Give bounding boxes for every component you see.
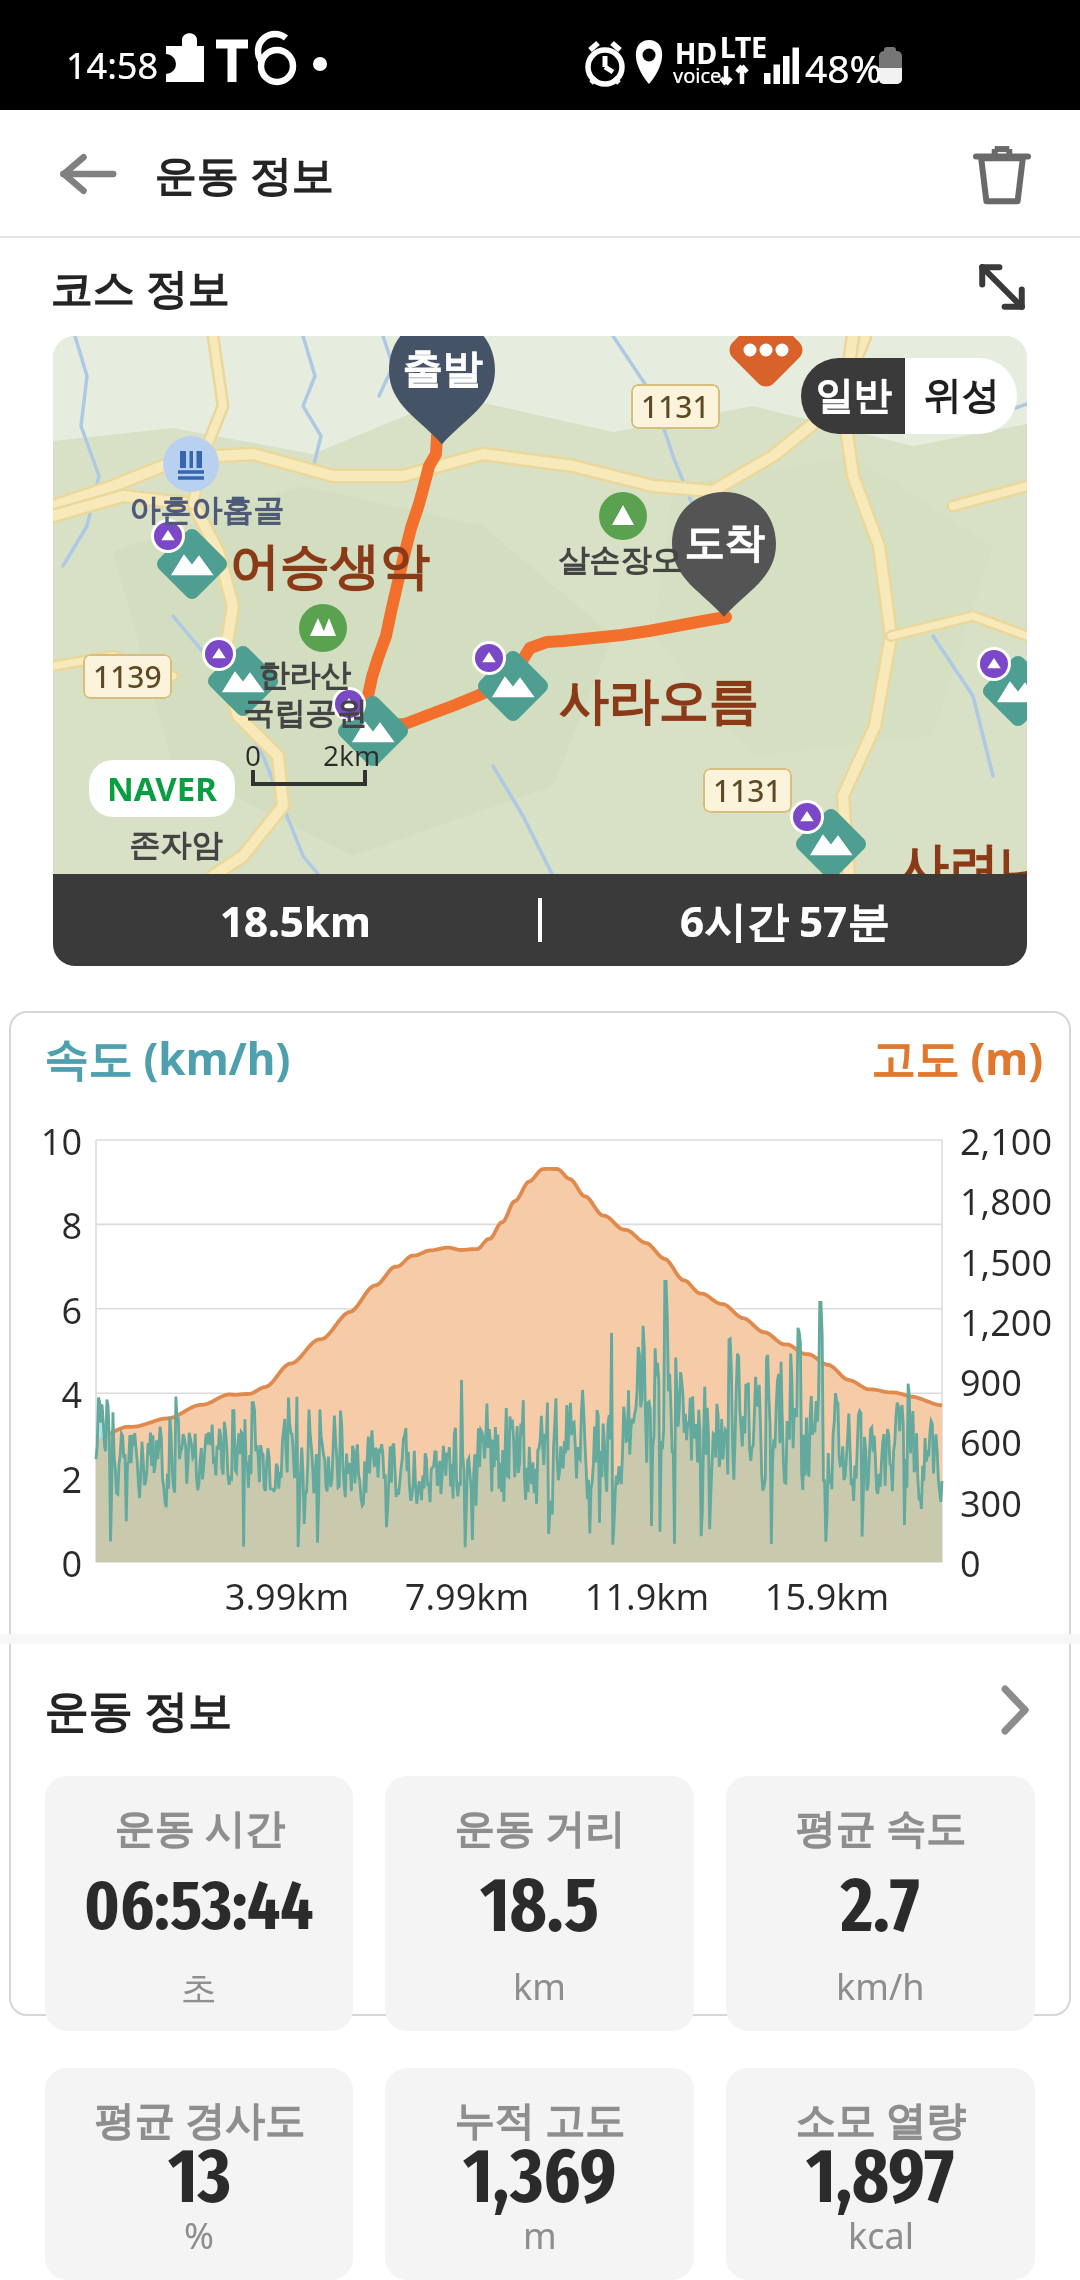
button[interactable]: Expand map (962, 247, 1042, 327)
staticText: 10 (24, 1117, 82, 1166)
staticText: 소모 열량 (795, 2092, 966, 2147)
staticText: 18.5 (480, 1860, 599, 1951)
staticText: 6 (24, 1286, 82, 1335)
staticText: 평균 속도 (795, 1800, 966, 1855)
staticText: 고도 (m) (871, 1028, 1044, 1088)
staticText: LTE (720, 28, 767, 66)
staticText: 2,100 (960, 1117, 1070, 1166)
staticText: 1139 (93, 656, 162, 697)
staticText: 1131 (713, 770, 782, 811)
staticText: 11.9km (562, 1572, 732, 1621)
staticText: 속도 (km/h) (44, 1028, 291, 1088)
button[interactable]: Back (44, 130, 132, 218)
staticText: 출발 (402, 344, 482, 394)
button[interactable]: 평균 속도 (726, 1776, 1035, 2031)
staticText: 아흔아홉골 (129, 491, 284, 530)
staticText: 2.7 (841, 1860, 920, 1951)
staticText: 1,200 (960, 1298, 1070, 1347)
staticText: kcal (848, 2211, 914, 2260)
staticText: 2km (323, 736, 381, 774)
staticText: HD (675, 34, 717, 72)
staticText: 4 (24, 1370, 82, 1419)
button[interactable]: 소모 열량 (726, 2068, 1035, 2280)
button[interactable]: 운동 시간 (45, 1776, 353, 2031)
staticText: 일반 (815, 372, 891, 420)
staticText: m (523, 2211, 557, 2260)
staticText: 운동 거리 (454, 1800, 625, 1855)
staticText: 3.99km (202, 1572, 372, 1621)
staticText: 1,369 (463, 2131, 617, 2222)
staticText: 존자암 (129, 826, 222, 865)
staticText: 국립공원 (243, 694, 367, 733)
staticText: km (513, 1962, 566, 2011)
staticText: % (184, 2211, 214, 2260)
button[interactable]: Course map (53, 336, 1027, 966)
staticText: 사라오름 (558, 671, 758, 734)
button[interactable]: 운동 정보 (0, 1644, 1080, 1776)
button[interactable]: 일반 (801, 358, 905, 434)
staticText: 1,500 (960, 1238, 1070, 1287)
staticText: 48% (805, 41, 883, 94)
staticText: 살손장오 (558, 541, 682, 580)
staticText: 600 (960, 1418, 1070, 1467)
staticText: 6시간 57분 (680, 892, 889, 949)
staticText: 운동 정보 (154, 146, 333, 203)
button[interactable]: 평균 경사도 (45, 2068, 353, 2280)
button[interactable]: 운동 거리 (385, 1776, 694, 2031)
button[interactable]: Delete (958, 130, 1046, 218)
staticText: 13 (168, 2131, 231, 2222)
staticText: 운동 정보 (44, 1680, 232, 1740)
staticText: 14:58 (66, 41, 159, 90)
staticText: 900 (960, 1358, 1070, 1407)
staticText: 2 (24, 1455, 82, 1504)
staticText: 7.99km (382, 1572, 552, 1621)
staticText: 1,800 (960, 1177, 1070, 1226)
staticText: NAVER (107, 766, 217, 811)
staticText: 1131 (641, 386, 710, 427)
staticText: 어승생악 (229, 536, 429, 599)
staticText: voice (673, 62, 722, 89)
button[interactable]: 누적 고도 (385, 2068, 694, 2280)
staticText: 18.5km (220, 892, 371, 949)
staticText: 한라산 (258, 656, 351, 695)
staticText: 초 (181, 1966, 217, 2011)
staticText: 위성 (923, 372, 999, 420)
staticText: 8 (24, 1201, 82, 1250)
staticText: 0 (245, 736, 262, 774)
staticText: km/h (836, 1962, 925, 2011)
button[interactable]: 위성 (905, 358, 1017, 434)
staticText: 1,897 (806, 2131, 955, 2222)
staticText: 운동 시간 (114, 1800, 285, 1855)
staticText: 06:53:44 (84, 1864, 314, 1948)
staticText: 0 (24, 1539, 82, 1588)
staticText: 300 (960, 1479, 1070, 1528)
staticText: 0 (960, 1539, 1070, 1588)
staticText: 코스 정보 (50, 259, 229, 316)
staticText: 평균 경사도 (94, 2092, 305, 2147)
staticText: 도착 (684, 518, 764, 568)
staticText: 15.9km (742, 1572, 912, 1621)
staticText: 누적 고도 (454, 2092, 625, 2147)
staticText: 사려니오름 (898, 836, 1027, 899)
